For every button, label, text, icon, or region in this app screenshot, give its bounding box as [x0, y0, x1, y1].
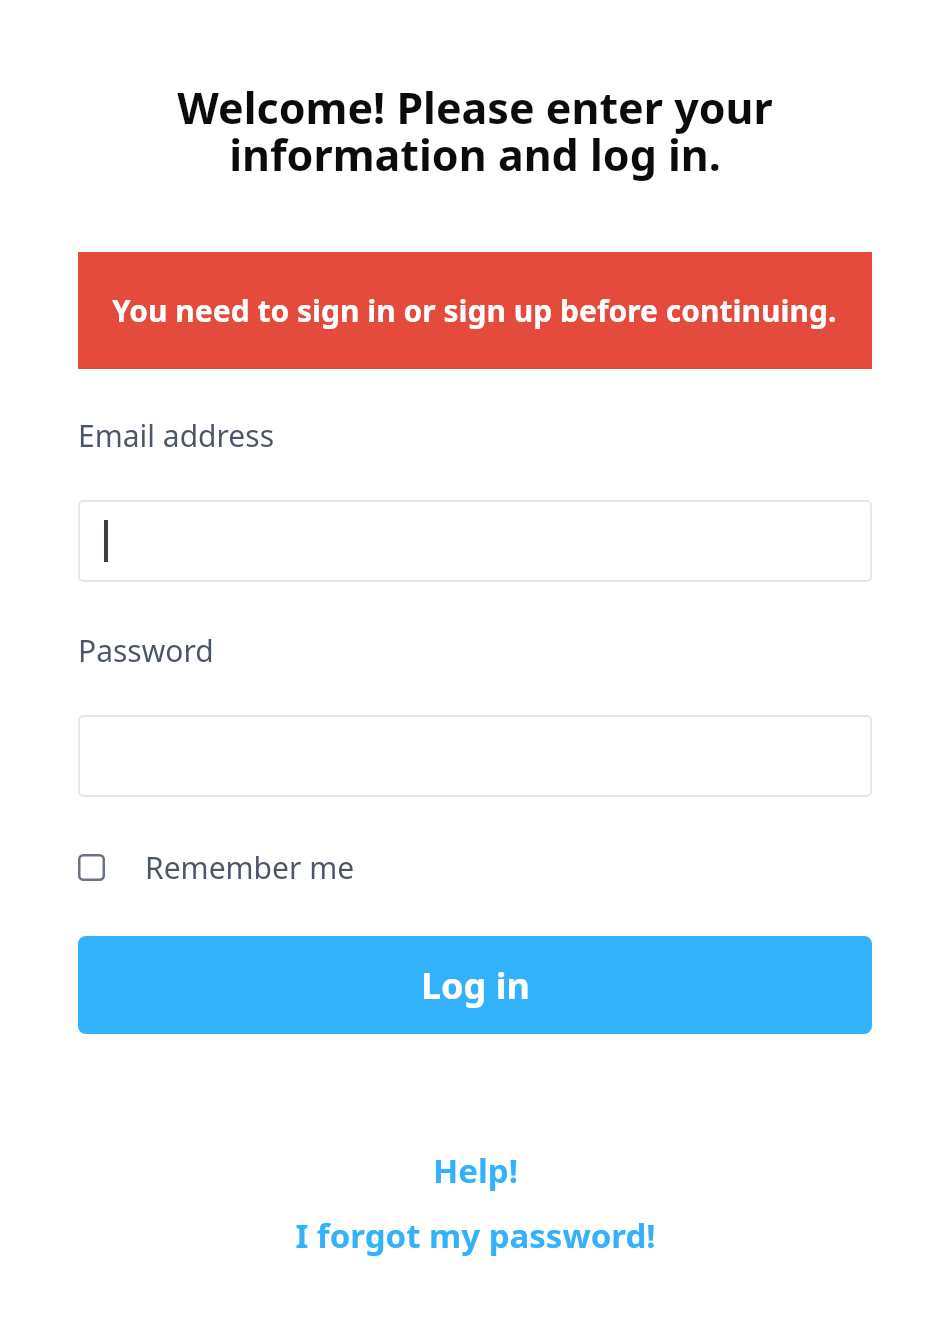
staticText: Remember me: [145, 847, 355, 888]
other: Remember me checkbox: [78, 854, 105, 881]
staticText: Help!: [433, 1148, 518, 1193]
button[interactable]: You need to sign in or sign up before co…: [78, 252, 872, 369]
staticText: Log in: [421, 961, 530, 1010]
staticText: You need to sign in or sign up before co…: [112, 290, 837, 331]
staticText: Password: [78, 630, 214, 671]
button[interactable]: Remember me checkbox: [78, 847, 355, 888]
button[interactable]: Help!: [0, 1148, 950, 1193]
staticText: Email address: [78, 415, 275, 456]
button[interactable]: [78, 715, 872, 797]
staticText: Welcome! Please enter your information a…: [70, 78, 880, 183]
button[interactable]: Log in: [78, 936, 872, 1034]
button[interactable]: I forgot my password!: [0, 1213, 950, 1258]
button[interactable]: [78, 500, 872, 582]
staticText: I forgot my password!: [295, 1213, 656, 1258]
